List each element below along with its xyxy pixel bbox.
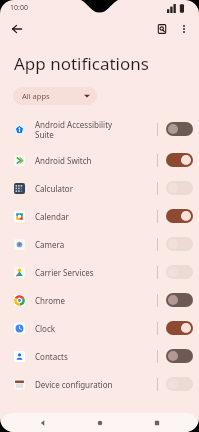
staticText: Chrome [35, 295, 157, 306]
staticText: Android Accessibility Suite [35, 119, 157, 140]
button[interactable]: More options [173, 18, 195, 40]
button[interactable]: Toggle notifications [166, 153, 193, 167]
button[interactable]: Help and feedback [151, 18, 173, 40]
button[interactable]: Toggle notifications [166, 181, 193, 195]
button[interactable]: Toggle notifications [166, 321, 193, 335]
button[interactable]: Calculator [0, 174, 199, 202]
button[interactable]: Toggle notifications [166, 265, 193, 279]
staticText: Carrier Services [35, 267, 157, 278]
button[interactable]: Android Accessibility Suite [0, 112, 199, 146]
button[interactable]: Calendar [0, 202, 199, 230]
staticText: Clock [35, 323, 157, 334]
staticText: Device configuration [35, 379, 157, 390]
button[interactable]: Toggle notifications [166, 349, 193, 363]
button[interactable]: Toggle notifications [166, 377, 193, 391]
button[interactable]: Clock [0, 314, 199, 342]
staticText: Android Switch [35, 155, 157, 166]
staticText: Contacts [35, 351, 157, 362]
button[interactable]: Toggle notifications [166, 209, 193, 223]
button[interactable]: Android Switch [0, 146, 199, 174]
staticText: App notifications [14, 52, 149, 75]
button[interactable]: Recent apps [128, 413, 185, 432]
staticText: Calculator [35, 183, 157, 194]
button[interactable]: Back [5, 17, 29, 41]
button[interactable]: Back [14, 413, 71, 432]
button[interactable]: Carrier Services [0, 258, 199, 286]
staticText: All apps [22, 91, 50, 101]
button[interactable]: Device configuration [0, 370, 199, 398]
staticText: Calendar [35, 211, 157, 222]
button[interactable]: Contacts [0, 342, 199, 370]
button[interactable]: All apps [13, 87, 97, 105]
staticText: 10:00 [10, 3, 28, 13]
button[interactable]: Toggle notifications [166, 237, 193, 251]
button[interactable]: Toggle notifications [166, 122, 193, 136]
button[interactable]: Chrome [0, 286, 199, 314]
staticText: Camera [35, 239, 157, 250]
button[interactable]: Home [71, 413, 128, 432]
button[interactable]: Toggle notifications [166, 293, 193, 307]
button[interactable]: Camera [0, 230, 199, 258]
